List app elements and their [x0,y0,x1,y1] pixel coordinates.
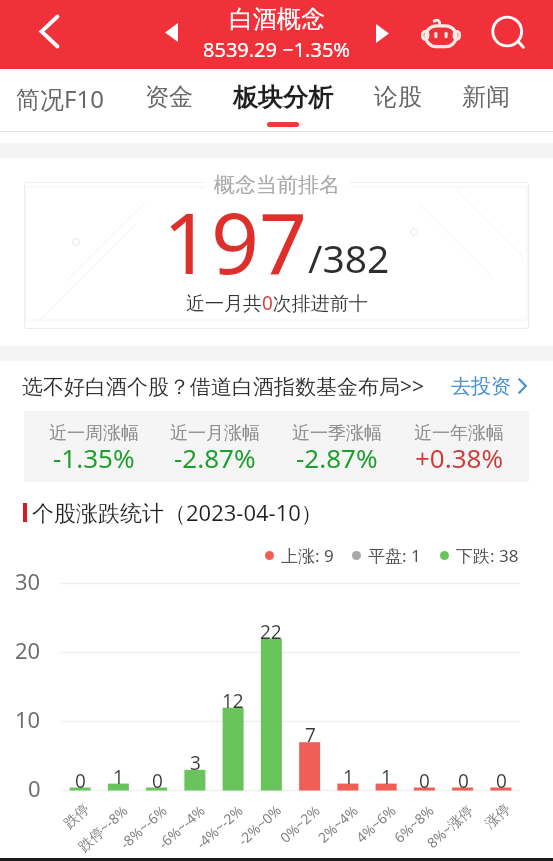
staticText: +0.38% [415,440,504,475]
staticText: 6%~8% [390,800,438,847]
staticText: 0 [152,768,163,794]
staticText: 白酒概念 [229,4,325,34]
button[interactable]: Next sector [364,15,400,51]
button[interactable]: AI assistant [419,11,463,55]
staticText: 论股 [374,82,422,112]
staticText: -4%~-2% [192,800,247,853]
button[interactable]: 论股 [374,69,422,131]
button[interactable]: 选不好白酒个股？借道白酒指数基金布局>> [0,361,553,411]
staticText: 近一月涨幅 [170,422,260,445]
staticText: 板块分析 [233,82,333,113]
staticText: /382 [308,231,390,284]
staticText: 近一月共0次排进前十 [186,290,368,316]
staticText: 新闻 [462,82,510,112]
button[interactable]: Search [487,12,531,56]
staticText: 1 [343,764,354,790]
staticText: -2.87% [174,440,256,475]
staticText: 7 [305,722,316,748]
staticText: 3 [190,750,201,776]
staticText: 30 [15,566,41,596]
staticText: 跌停 [60,800,93,833]
staticText: -6%~-4% [154,800,209,853]
staticText: 197 [163,184,308,298]
staticText: 22 [260,619,282,645]
staticText: 0 [75,768,86,794]
button[interactable]: Previous sector [153,14,189,50]
staticText: -2.87% [296,440,378,475]
button[interactable]: 板块分析 [233,69,333,131]
staticText: 跌停~-8% [74,800,132,855]
staticText: 下跌: 38 [456,544,519,567]
staticText: 0 [496,768,507,794]
staticText: 平盘: 1 [368,544,421,567]
button[interactable]: 新闻 [462,69,510,131]
staticText: 8539.29 −1.35% [203,36,350,63]
staticText: 选不好白酒个股？借道白酒指数基金布局>> [22,372,425,401]
button[interactable]: 资金 [145,69,193,131]
staticText: 4%~6% [352,800,400,847]
staticText: 0 [28,773,41,803]
staticText: 近一季涨幅 [292,422,382,445]
staticText: 近一周涨幅 [49,422,139,445]
staticText: -1.35% [53,440,135,475]
staticText: 0%~2% [276,800,324,847]
staticText: 简况F10 [16,82,104,115]
staticText: 20 [15,635,41,665]
staticText: 1 [113,764,124,790]
staticText: 资金 [145,82,193,112]
staticText: 涨停 [481,800,514,833]
staticText: 0 [419,768,430,794]
staticText: -2%~0% [234,800,285,849]
staticText: 8%~涨停 [423,800,477,852]
staticText: 12 [222,688,244,714]
staticText: 0 [458,768,469,794]
staticText: 10 [15,704,41,734]
staticText: 个股涨跌统计（2023-04-10） [32,497,323,527]
staticText: 去投资 [451,374,511,399]
staticText: 1 [381,764,392,790]
staticText: 近一年涨幅 [414,422,504,445]
button[interactable]: 简况F10 [16,69,104,131]
staticText: 概念当前排名 [214,172,340,198]
button[interactable]: Back [21,3,77,59]
staticText: 上涨: 9 [281,544,334,567]
staticText: 2%~4% [314,800,362,847]
staticText: -8%~-6% [116,800,171,853]
